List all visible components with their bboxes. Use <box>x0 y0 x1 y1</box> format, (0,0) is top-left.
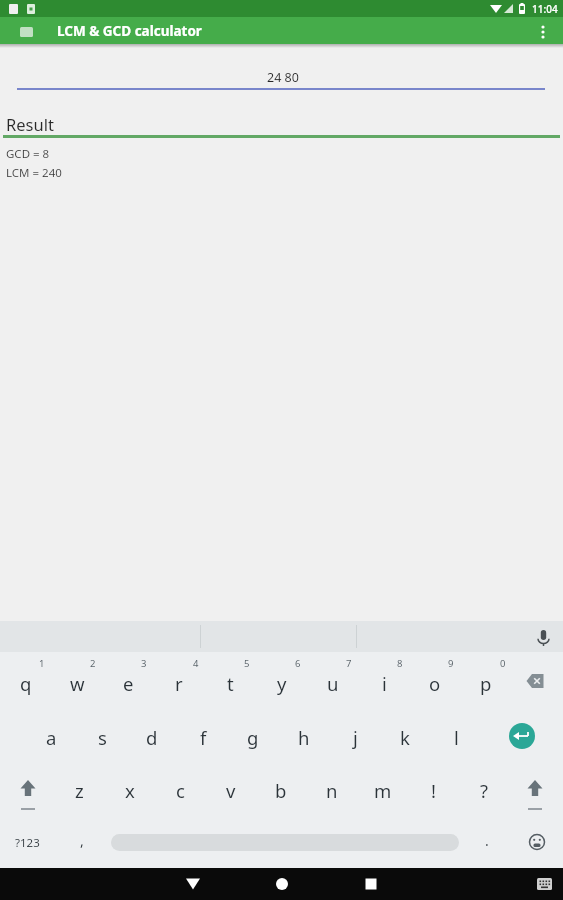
button[interactable] <box>351 868 391 900</box>
button[interactable]: . <box>447 826 527 854</box>
staticText: z <box>75 778 84 803</box>
button[interactable]: x <box>90 776 170 804</box>
button[interactable]: o <box>395 669 475 697</box>
button[interactable]: , <box>42 826 122 854</box>
button[interactable] <box>509 723 535 749</box>
button[interactable]: y <box>242 669 322 697</box>
button[interactable]: a <box>11 723 91 751</box>
button[interactable] <box>521 827 553 859</box>
button[interactable] <box>512 658 563 706</box>
staticText: w <box>70 671 85 696</box>
staticText: 7 <box>346 657 352 670</box>
staticText: p <box>480 671 492 696</box>
button[interactable]: r <box>139 669 219 697</box>
button[interactable]: e <box>88 669 168 697</box>
button[interactable]: g <box>213 723 293 751</box>
button[interactable]: v <box>191 776 271 804</box>
button[interactable]: t <box>190 669 270 697</box>
staticText: n <box>326 778 338 803</box>
button[interactable]: f <box>163 723 243 751</box>
staticText: 24 80 <box>267 69 299 86</box>
staticText: t <box>227 671 234 696</box>
button[interactable]: i <box>344 669 424 697</box>
staticText: 0 <box>500 657 506 670</box>
staticText: i <box>382 671 387 696</box>
button[interactable] <box>262 868 302 900</box>
staticText: l <box>454 725 459 750</box>
staticText: s <box>98 725 107 750</box>
staticText: k <box>400 725 410 750</box>
button[interactable]: l <box>416 723 496 751</box>
button[interactable]: b <box>241 776 321 804</box>
button[interactable] <box>510 766 561 814</box>
button[interactable]: j <box>315 723 395 751</box>
staticText: 2 <box>90 657 96 670</box>
staticText: g <box>247 725 259 750</box>
staticText: 6 <box>295 657 301 670</box>
button[interactable]: d <box>112 723 192 751</box>
staticText: v <box>226 778 236 803</box>
staticText: ! <box>431 778 436 803</box>
staticText: j <box>353 725 358 750</box>
staticText: 11:04 <box>532 2 558 16</box>
staticText: 8 <box>397 657 403 670</box>
staticText: , <box>80 831 84 850</box>
button[interactable] <box>2 766 53 814</box>
staticText: ? <box>480 778 489 803</box>
button[interactable] <box>0 17 563 44</box>
button[interactable] <box>527 625 559 649</box>
button[interactable]: u <box>293 669 373 697</box>
button[interactable]: h <box>264 723 344 751</box>
button[interactable]: p <box>446 669 526 697</box>
staticText: . <box>485 831 489 850</box>
staticText: u <box>327 671 339 696</box>
staticText: LCM & GCD calculator <box>57 22 202 40</box>
button[interactable]: w <box>37 669 117 697</box>
staticText: Result <box>6 113 54 135</box>
button[interactable]: z <box>39 776 119 804</box>
button[interactable]: ? <box>444 776 524 804</box>
staticText: 9 <box>448 657 454 670</box>
staticText: a <box>46 725 57 750</box>
button[interactable]: ! <box>393 776 473 804</box>
button[interactable]: k <box>365 723 445 751</box>
staticText: f <box>200 725 207 750</box>
staticText: h <box>298 725 310 750</box>
button[interactable] <box>173 868 213 900</box>
button[interactable] <box>20 27 33 37</box>
staticText: 5 <box>244 657 250 670</box>
staticText: y <box>277 671 287 696</box>
staticText: 4 <box>193 657 199 670</box>
button[interactable]: n <box>292 776 372 804</box>
button[interactable]: s <box>62 723 142 751</box>
button[interactable]: ?123 <box>0 829 67 857</box>
staticText: e <box>123 671 134 696</box>
staticText: c <box>176 778 185 803</box>
staticText: x <box>125 778 135 803</box>
staticText: b <box>275 778 287 803</box>
staticText: o <box>429 671 441 696</box>
button[interactable] <box>531 19 555 43</box>
staticText: 3 <box>141 657 147 670</box>
staticText: r <box>175 671 183 696</box>
button[interactable]: m <box>343 776 423 804</box>
button[interactable]: q <box>0 669 66 697</box>
staticText: ?123 <box>15 835 40 851</box>
staticText: d <box>146 725 158 750</box>
button[interactable]: c <box>140 776 220 804</box>
staticText: 1 <box>39 657 45 670</box>
staticText: q <box>20 671 32 696</box>
staticText: GCD = 8 <box>6 146 50 161</box>
staticText: m <box>374 778 392 803</box>
staticText: LCM = 240 <box>6 165 62 180</box>
